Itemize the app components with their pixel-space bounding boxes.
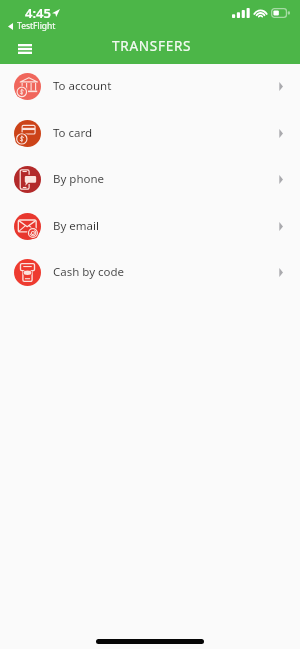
button[interactable]: Cash by code bbox=[0, 249, 300, 296]
button[interactable]: By email bbox=[0, 203, 300, 250]
staticText: TRANSFERS bbox=[112, 37, 192, 55]
staticText: To card bbox=[53, 125, 93, 141]
button[interactable]: To card bbox=[0, 110, 300, 157]
button[interactable]: By phone bbox=[0, 156, 300, 203]
staticText: TestFlight bbox=[17, 20, 56, 32]
staticText: By phone bbox=[53, 171, 105, 187]
button[interactable]: To account bbox=[0, 63, 300, 110]
staticText: Cash by code bbox=[53, 264, 125, 280]
button[interactable]: Open navigation menu bbox=[9, 33, 40, 64]
staticText: To account bbox=[53, 78, 112, 94]
staticText: 4:45 bbox=[25, 4, 51, 22]
staticText: By email bbox=[53, 218, 99, 234]
